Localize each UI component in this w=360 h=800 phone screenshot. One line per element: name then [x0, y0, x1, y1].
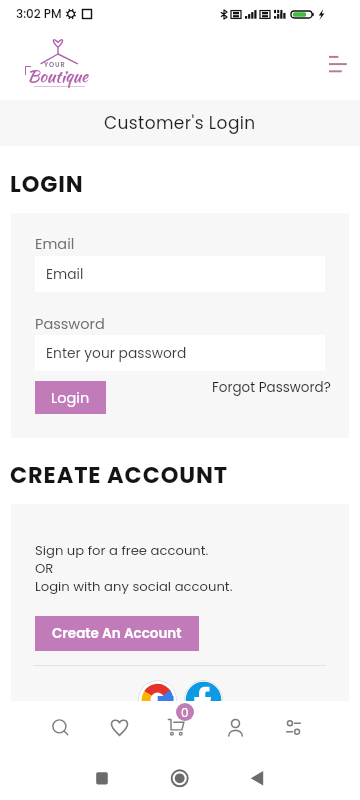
button[interactable]: Sign in with Google — [138, 680, 177, 719]
staticText: 3:02 PM — [16, 5, 62, 22]
staticText: Email — [46, 265, 84, 284]
button[interactable]: Home — [156, 752, 204, 800]
button[interactable]: Back — [233, 752, 281, 800]
staticText: Enter your password — [46, 344, 187, 363]
staticText: YOUR — [44, 60, 66, 69]
button[interactable]: Login — [35, 381, 106, 414]
button[interactable]: Forgot Password? — [212, 378, 331, 397]
staticText: CREATE ACCOUNT — [10, 459, 229, 490]
staticText: OR — [35, 559, 54, 577]
staticText: Customer's Login — [104, 111, 256, 135]
button[interactable]: Email — [35, 256, 325, 292]
button[interactable]: Sign in with Facebook — [184, 680, 223, 719]
staticText: Login — [51, 388, 90, 408]
button[interactable]: Account — [206, 701, 264, 752]
button[interactable]: Menu — [319, 44, 357, 82]
button[interactable]: Create An Account — [35, 616, 199, 651]
staticText: Sign up for a free account. — [35, 541, 209, 559]
staticText: 0 — [181, 704, 189, 721]
staticText: Password — [35, 314, 105, 334]
button[interactable]: Filter — [264, 701, 322, 752]
staticText: Login with any social account. — [35, 577, 233, 595]
staticText: Boutique — [27, 64, 88, 89]
button[interactable]: Search — [32, 701, 90, 752]
staticText: Create An Account — [52, 624, 182, 643]
button[interactable]: Wishlist — [90, 701, 148, 752]
button[interactable]: Cart — [148, 701, 206, 752]
staticText: Forgot Password? — [212, 378, 331, 397]
button[interactable]: Enter your password — [35, 335, 325, 371]
staticText: Email — [35, 234, 75, 254]
button[interactable]: Recent apps — [78, 752, 126, 800]
staticText: LOGIN — [10, 168, 84, 199]
